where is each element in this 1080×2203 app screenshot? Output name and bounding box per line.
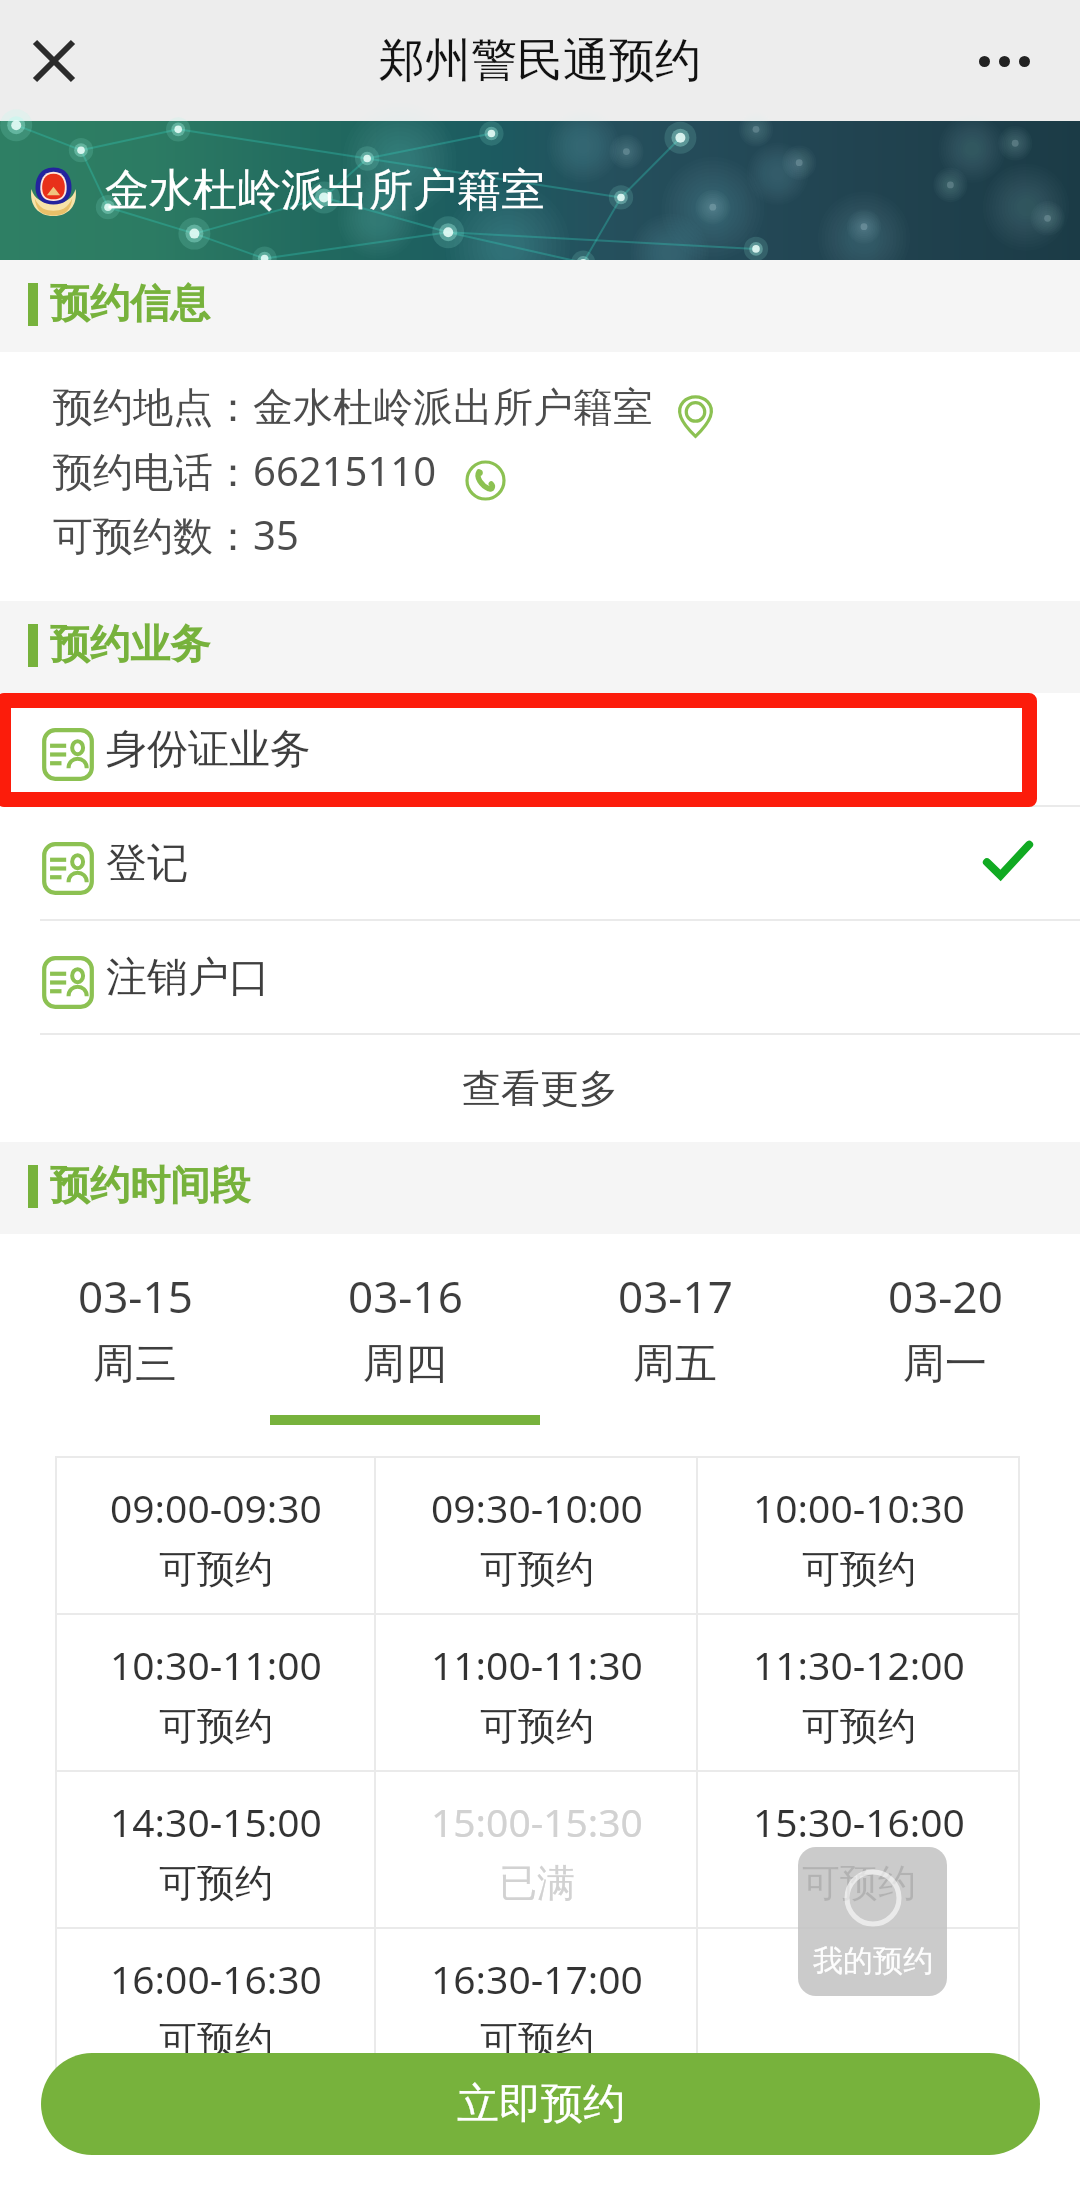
button[interactable]: 03-15 — [0, 1234, 270, 1456]
staticText: 15:00-15:30 — [431, 1795, 643, 1848]
button[interactable]: Close — [18, 25, 90, 97]
staticText: 周五 — [633, 1338, 717, 1391]
staticText: 15:30-16:00 — [753, 1795, 965, 1848]
staticText: 可预约 — [159, 1859, 273, 1907]
staticText: 预约信息 — [50, 278, 210, 328]
staticText: 金水杜岭派出所户籍室 — [105, 163, 545, 218]
button[interactable]: 15:30-16:00 — [698, 1772, 1020, 1929]
staticText: 可预约 — [480, 1702, 594, 1750]
staticText: 14:30-15:00 — [110, 1795, 322, 1848]
staticText: 周一 — [903, 1338, 987, 1391]
staticText: 03-16 — [348, 1266, 463, 1326]
staticText: 03-20 — [888, 1266, 1003, 1326]
staticText: 03-17 — [618, 1266, 733, 1326]
staticText: 可预约 — [802, 1702, 916, 1750]
staticText: 身份证业务 — [106, 724, 311, 776]
button[interactable]: 立即预约 — [41, 2053, 1040, 2155]
staticText: 已满 — [499, 1859, 575, 1907]
staticText: 注销户口 — [106, 952, 270, 1004]
staticText: 可预约 — [159, 1545, 273, 1593]
staticText: 09:30-10:00 — [431, 1481, 643, 1534]
staticText: 周三 — [93, 1338, 177, 1391]
staticText: 16:30-17:00 — [431, 1952, 643, 2005]
button[interactable]: 10:00-10:30 — [698, 1458, 1020, 1615]
button[interactable]: 登记 — [0, 807, 1080, 921]
button[interactable]: 16:00-16:30 — [55, 1929, 376, 2086]
button[interactable]: 11:30-12:00 — [698, 1615, 1020, 1772]
button[interactable]: 16:30-17:00 — [376, 1929, 698, 2086]
button[interactable]: 03-17 — [540, 1234, 810, 1456]
staticText: 预约业务 — [50, 619, 210, 669]
staticText: 预约时间段 — [50, 1160, 250, 1210]
staticText: 11:00-11:30 — [431, 1638, 643, 1691]
staticText: 10:30-11:00 — [110, 1638, 322, 1691]
staticText: 10:00-10:30 — [753, 1481, 965, 1534]
staticText: 可预约 — [480, 2016, 594, 2064]
staticText: 16:00-16:30 — [110, 1952, 322, 2005]
button[interactable]: 注销户口 — [0, 921, 1080, 1035]
staticText: 立即预约 — [457, 2078, 625, 2131]
staticText: 郑州警民通预约 — [379, 32, 701, 90]
staticText: 登记 — [106, 838, 188, 890]
button[interactable]: 03-20 — [810, 1234, 1080, 1456]
staticText: 03-15 — [78, 1266, 193, 1326]
button[interactable]: 15:00-15:30 — [376, 1772, 698, 1929]
button[interactable]: 03-16 — [270, 1234, 540, 1456]
staticText: 可预约数：35 — [53, 507, 299, 562]
button[interactable]: 10:30-11:00 — [55, 1615, 376, 1772]
button[interactable] — [698, 1929, 1020, 2086]
staticText: 可预约 — [159, 1702, 273, 1750]
staticText: 可预约 — [802, 1859, 916, 1907]
staticText: 我的预约 — [813, 1942, 933, 1980]
button[interactable]: More options — [964, 21, 1044, 101]
button[interactable]: 14:30-15:00 — [55, 1772, 376, 1929]
staticText: 可预约 — [480, 1545, 594, 1593]
staticText: 预约地点：金水杜岭派出所户籍室 — [53, 382, 653, 432]
button[interactable]: 我的预约 — [798, 1847, 947, 1996]
button[interactable]: 09:00-09:30 — [55, 1458, 376, 1615]
staticText: 09:00-09:30 — [110, 1481, 322, 1534]
button[interactable]: 身份证业务 — [0, 693, 1080, 807]
staticText: 可预约 — [159, 2016, 273, 2064]
staticText: 11:30-12:00 — [753, 1638, 965, 1691]
button[interactable]: 09:30-10:00 — [376, 1458, 698, 1615]
button[interactable]: 11:00-11:30 — [376, 1615, 698, 1772]
staticText: 查看更多 — [462, 1064, 618, 1113]
staticText: 可预约 — [802, 1545, 916, 1593]
staticText: 周四 — [363, 1338, 447, 1391]
staticText: 预约电话：66215110 — [53, 443, 437, 498]
button[interactable]: 查看更多 — [0, 1035, 1080, 1142]
